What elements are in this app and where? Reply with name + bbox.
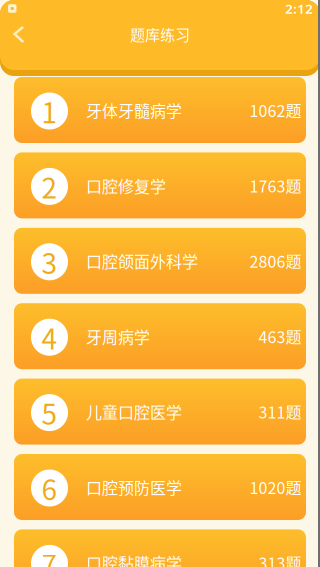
button[interactable]: Back <box>0 17 34 51</box>
staticText: 口腔修复学 <box>86 174 166 197</box>
button[interactable]: 1 <box>14 77 306 143</box>
staticText: 1020题 <box>249 475 301 499</box>
button[interactable]: 4 <box>14 303 306 369</box>
button[interactable]: 5 <box>14 379 306 445</box>
button[interactable]: 3 <box>14 228 306 294</box>
staticText: 口腔颌面外科学 <box>86 249 198 272</box>
button[interactable]: 6 <box>14 454 306 520</box>
staticText: 3 <box>41 241 57 282</box>
staticText: 6 <box>41 468 57 508</box>
staticText: 313题 <box>258 551 301 567</box>
staticText: 儿童口腔医学 <box>86 400 182 423</box>
staticText: 牙周病学 <box>86 325 150 348</box>
staticText: 1 <box>41 91 57 131</box>
button[interactable]: 7 <box>14 529 306 567</box>
staticText: 口腔黏膜病学 <box>86 551 182 567</box>
staticText: 7 <box>41 543 57 567</box>
staticText: 1763题 <box>249 174 301 197</box>
staticText: 463题 <box>258 325 301 348</box>
staticText: 2806题 <box>249 249 301 272</box>
staticText: 4 <box>41 317 57 357</box>
staticText: 题库练习 <box>130 23 190 45</box>
staticText: 口腔预防医学 <box>86 475 182 499</box>
staticText: 1062题 <box>249 98 301 122</box>
staticText: 5 <box>41 392 57 433</box>
staticText: 2:12 <box>285 0 313 17</box>
button[interactable]: 2 <box>14 152 306 218</box>
staticText: 2 <box>41 166 57 207</box>
staticText: 牙体牙髓病学 <box>86 98 182 122</box>
staticText: 311题 <box>258 400 301 423</box>
